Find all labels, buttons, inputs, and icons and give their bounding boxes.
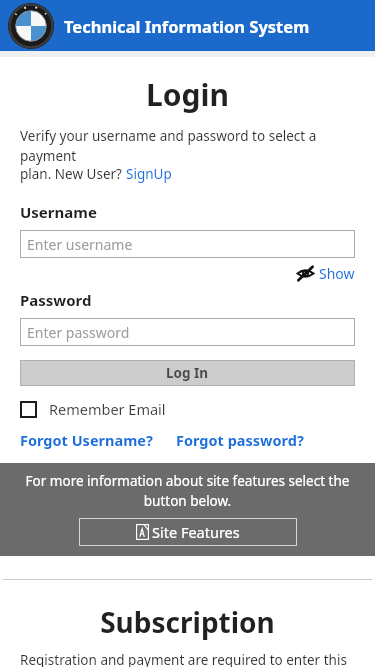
button[interactable]: Show password (297, 263, 355, 284)
staticText: Log In (166, 364, 209, 382)
button[interactable]: Log In (20, 360, 355, 386)
staticText: plan. New User? (20, 165, 126, 183)
staticText: Login (0, 74, 375, 115)
staticText: Forgot Username? (20, 430, 153, 450)
staticText: Registration and payment are required to… (20, 651, 355, 667)
staticText: Enter password (27, 323, 130, 342)
button[interactable]: Remember Email (20, 399, 166, 419)
staticText: Remember Email (49, 399, 166, 419)
staticText: For more information about site features… (14, 472, 361, 510)
button[interactable]: SignUp (126, 165, 172, 183)
staticText: Forgot password? (176, 430, 304, 450)
staticText: Site Features (152, 522, 240, 542)
staticText: Enter username (27, 235, 133, 254)
staticText: Subscription (3, 603, 372, 641)
button[interactable]: Enter username (20, 230, 355, 258)
button[interactable]: Forgot Username? (20, 430, 153, 450)
staticText: Password (20, 290, 92, 310)
other: BMW logo (8, 3, 54, 49)
staticText: SignUp (126, 165, 172, 183)
button[interactable]: Forgot password? (176, 430, 304, 450)
button[interactable]: Enter password (20, 318, 355, 346)
other: Show password (297, 267, 314, 280)
staticText: Technical Information System (64, 15, 310, 37)
staticText: Verify your username and password to sel… (20, 127, 355, 165)
button[interactable]: Site Features (79, 518, 297, 546)
staticText: Username (20, 202, 97, 222)
staticText: Show (319, 264, 355, 283)
